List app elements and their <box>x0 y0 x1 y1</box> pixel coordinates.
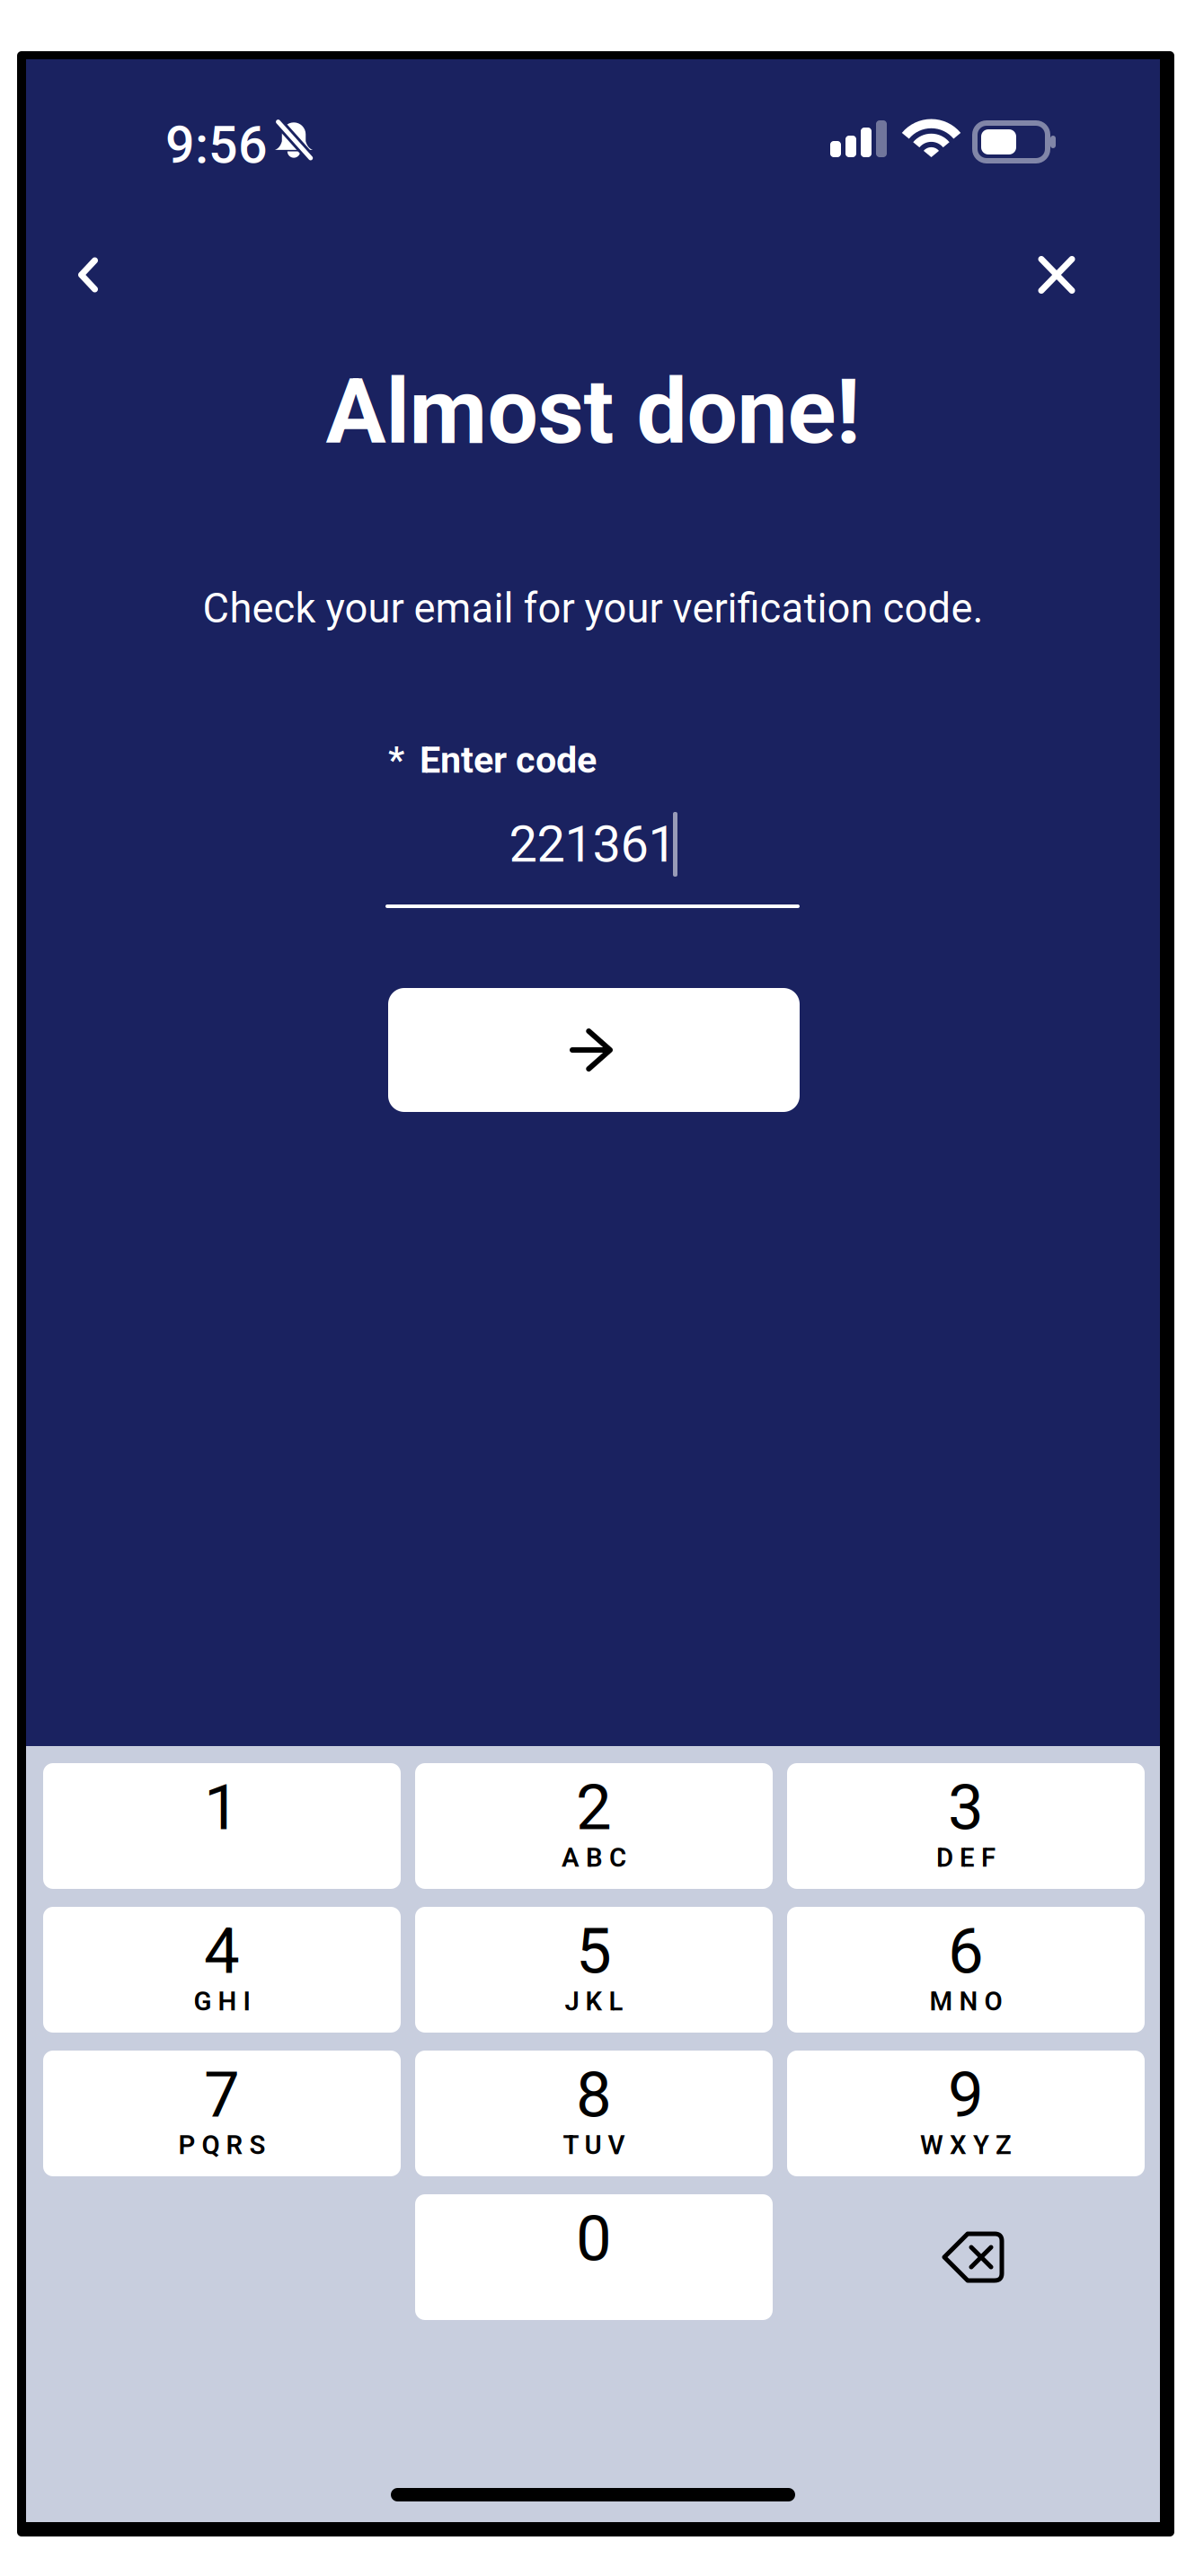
button[interactable]: Continue <box>388 988 800 1112</box>
button[interactable]: Close <box>1016 234 1097 315</box>
button[interactable]: 7 <box>43 2051 401 2176</box>
staticText: 3 <box>948 1770 984 1845</box>
staticText: T U V <box>563 2130 625 2160</box>
staticText: Almost done! <box>326 359 860 465</box>
staticText: M N O <box>929 1986 1002 2017</box>
button[interactable]: 5 <box>415 1907 773 2033</box>
staticText: 7 <box>204 2058 240 2132</box>
staticText: P Q R S <box>178 2130 266 2160</box>
button[interactable]: 0 <box>415 2194 773 2320</box>
staticText: 9 <box>948 2058 984 2132</box>
staticText: 221361 <box>509 815 676 874</box>
button[interactable]: 3 <box>787 1763 1145 1889</box>
button[interactable]: 1 <box>43 1763 401 1889</box>
button[interactable]: 2 <box>415 1763 773 1889</box>
staticText: 0 <box>576 2201 612 2276</box>
staticText: G H I <box>194 1986 250 2017</box>
staticText: Check your email for your verification c… <box>203 585 983 632</box>
staticText: J K L <box>565 1986 623 2017</box>
staticText: 8 <box>576 2058 612 2132</box>
button[interactable]: 8 <box>415 2051 773 2176</box>
staticText: D E F <box>936 1842 996 1873</box>
staticText: 1 <box>204 1770 240 1845</box>
staticText: Enter code <box>420 738 597 782</box>
staticText: 9:56 <box>165 115 268 175</box>
staticText: * <box>388 739 404 781</box>
staticText: 4 <box>204 1914 240 1988</box>
staticText: 2 <box>576 1770 612 1845</box>
staticText: 5 <box>576 1914 612 1988</box>
staticText: W X Y Z <box>920 2130 1012 2160</box>
staticText: 6 <box>948 1914 984 1988</box>
button[interactable]: Back <box>48 234 128 315</box>
button[interactable]: 6 <box>787 1907 1145 2033</box>
staticText: A B C <box>562 1842 626 1873</box>
button[interactable]: Delete <box>787 2194 1145 2320</box>
button[interactable]: 9 <box>787 2051 1145 2176</box>
button[interactable]: 4 <box>43 1907 401 2033</box>
